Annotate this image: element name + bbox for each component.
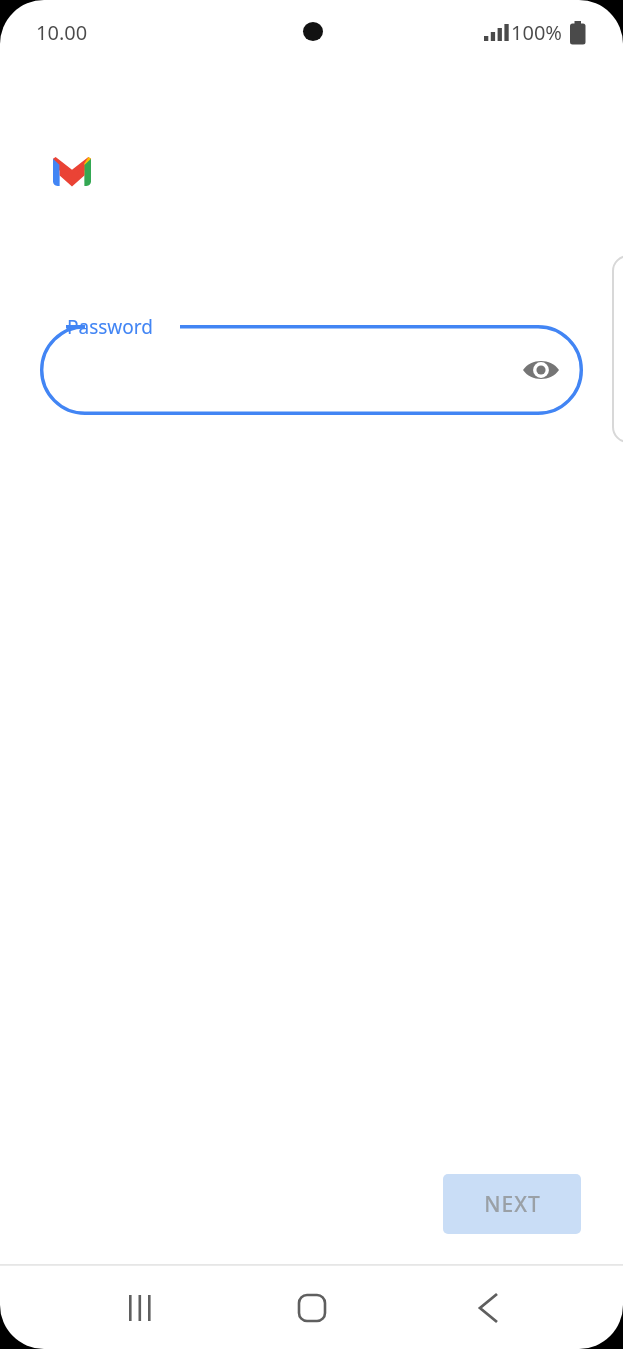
button[interactable]: Show password: [517, 346, 565, 394]
staticText: Password: [67, 314, 153, 340]
button[interactable]: Back: [452, 1272, 524, 1344]
button[interactable]: Home: [276, 1272, 348, 1344]
staticText: 10.00: [36, 19, 88, 46]
staticText: NEXT: [484, 1190, 541, 1219]
button[interactable]: NEXT: [443, 1174, 581, 1234]
button[interactable]: Show password: [40, 325, 583, 415]
button[interactable]: Recent apps: [104, 1272, 176, 1344]
staticText: 100%: [511, 19, 562, 46]
